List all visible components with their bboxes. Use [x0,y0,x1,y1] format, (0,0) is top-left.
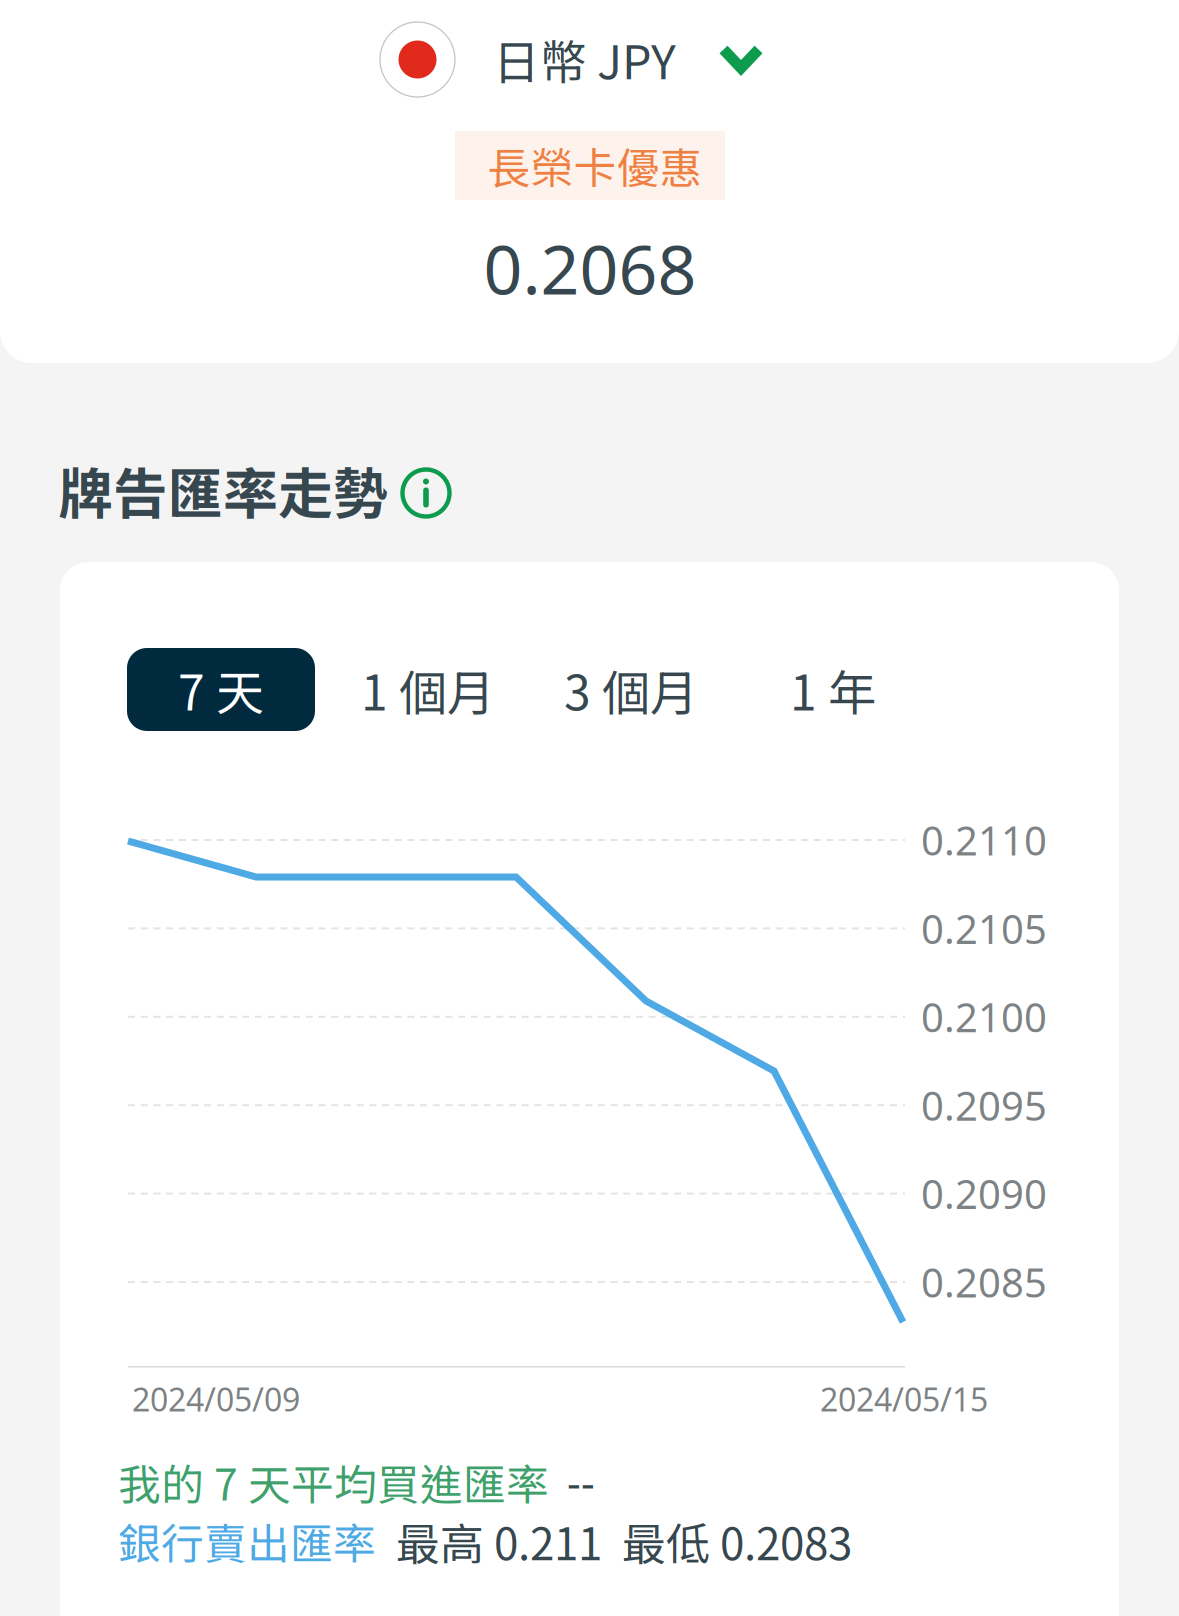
staticText: 2024/05/15 [820,1378,988,1420]
staticText: 長榮卡優惠 [487,135,702,196]
button[interactable]: 關於牌告匯率走勢 [401,465,451,515]
staticText: 最高 0.211 最低 0.2083 [396,1509,852,1573]
staticText: 日幣 JPY [493,25,676,93]
button[interactable]: 長榮卡優惠 [455,131,725,200]
button[interactable]: 日幣 JPY [380,18,784,102]
button[interactable]: 1 年 [753,648,913,731]
staticText: 0.2110 [921,813,1047,866]
staticText: 0.2068 [483,223,696,313]
staticText: 0.2095 [921,1079,1047,1132]
staticText: 3 個月 [564,655,698,724]
staticText: 0.2105 [921,902,1047,955]
staticText: 2024/05/09 [132,1378,300,1420]
button[interactable]: 7 天 [127,648,315,731]
staticText: 0.2085 [921,1255,1047,1308]
staticText: 1 年 [790,655,876,724]
staticText: 銀行賣出匯率 [118,1510,376,1572]
staticText: 7 天 [178,655,264,724]
staticText: -- [567,1454,595,1510]
staticText: 0.2100 [921,990,1047,1043]
staticText: 牌告匯率走勢 [58,450,388,530]
staticText: 1 個月 [361,655,495,724]
button[interactable]: 3 個月 [531,648,731,731]
staticText: 0.2090 [921,1167,1047,1220]
button[interactable]: 1 個月 [328,648,528,731]
staticText: 我的 7 天平均買進匯率 [118,1451,549,1513]
